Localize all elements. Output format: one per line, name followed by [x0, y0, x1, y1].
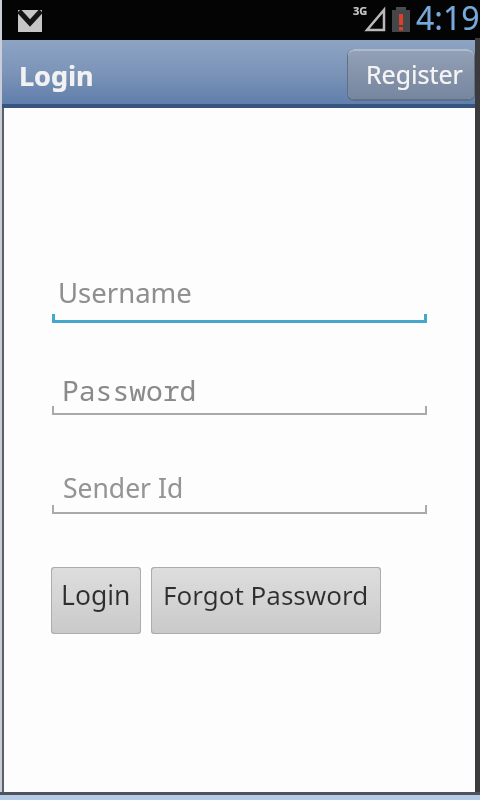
button[interactable]: Login — [51, 567, 141, 634]
staticText: Forgot Password — [163, 577, 369, 612]
button[interactable]: Username — [52, 274, 427, 324]
staticText: Sender Id — [63, 470, 184, 506]
staticText: Username — [58, 274, 192, 311]
staticText: Register — [366, 57, 463, 91]
button[interactable]: Sender Id — [52, 468, 427, 515]
staticText: 4:19 — [416, 0, 480, 40]
staticText: Password — [62, 371, 197, 409]
staticText: 3G — [353, 3, 368, 18]
button[interactable]: Forgot Password — [151, 567, 381, 634]
button[interactable]: Register — [347, 49, 475, 101]
staticText: Login — [19, 57, 94, 94]
button[interactable]: Password — [52, 370, 427, 416]
staticText: Login — [61, 577, 131, 613]
